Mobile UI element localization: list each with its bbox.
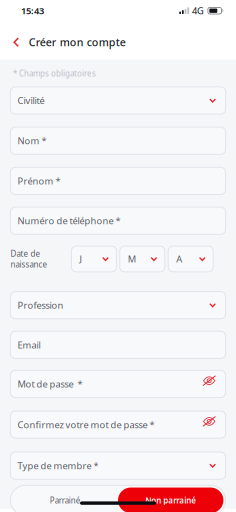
button[interactable]: Non parrainé <box>118 487 223 512</box>
staticText: Confirmez votre mot de passe * <box>17 418 154 431</box>
button[interactable]: Civilité <box>10 87 226 114</box>
button[interactable]: Type de membre * <box>10 452 226 479</box>
staticText: Profession <box>17 299 63 311</box>
staticText: M <box>128 253 136 265</box>
staticText: J <box>79 253 82 265</box>
staticText: Créer mon compte <box>29 35 126 49</box>
button[interactable]: Back <box>0 29 29 55</box>
button[interactable]: Numéro de téléphone * <box>10 207 226 234</box>
button[interactable]: M <box>120 246 165 272</box>
button[interactable]: Confirmez votre mot de passe * <box>10 411 226 438</box>
staticText: Non parrainé <box>145 495 196 506</box>
staticText: Prénom * <box>17 175 60 187</box>
staticText: 15:43 <box>21 4 44 17</box>
button[interactable]: Profession <box>10 292 226 319</box>
button[interactable]: Prénom * <box>10 167 226 194</box>
staticText: Type de membre * <box>17 459 98 472</box>
staticText: Parrainé <box>50 495 81 506</box>
button[interactable]: Parrainé <box>13 487 118 512</box>
button[interactable]: Mot de passe * <box>10 370 226 397</box>
staticText: A <box>176 253 182 265</box>
button[interactable]: Email <box>10 331 226 358</box>
button[interactable]: J <box>71 246 116 272</box>
button[interactable]: A <box>168 246 213 272</box>
staticText: Mot de passe * <box>17 378 82 390</box>
staticText: Date de naissance <box>10 248 47 270</box>
staticText: 4G <box>192 4 204 17</box>
staticText: Civilité <box>17 94 44 107</box>
button[interactable]: Nom * <box>10 127 226 154</box>
staticText: Email <box>17 339 40 351</box>
staticText: Nom * <box>17 134 46 147</box>
staticText: Numéro de téléphone * <box>17 214 120 227</box>
staticText: * Champs obligatoires <box>13 68 96 79</box>
